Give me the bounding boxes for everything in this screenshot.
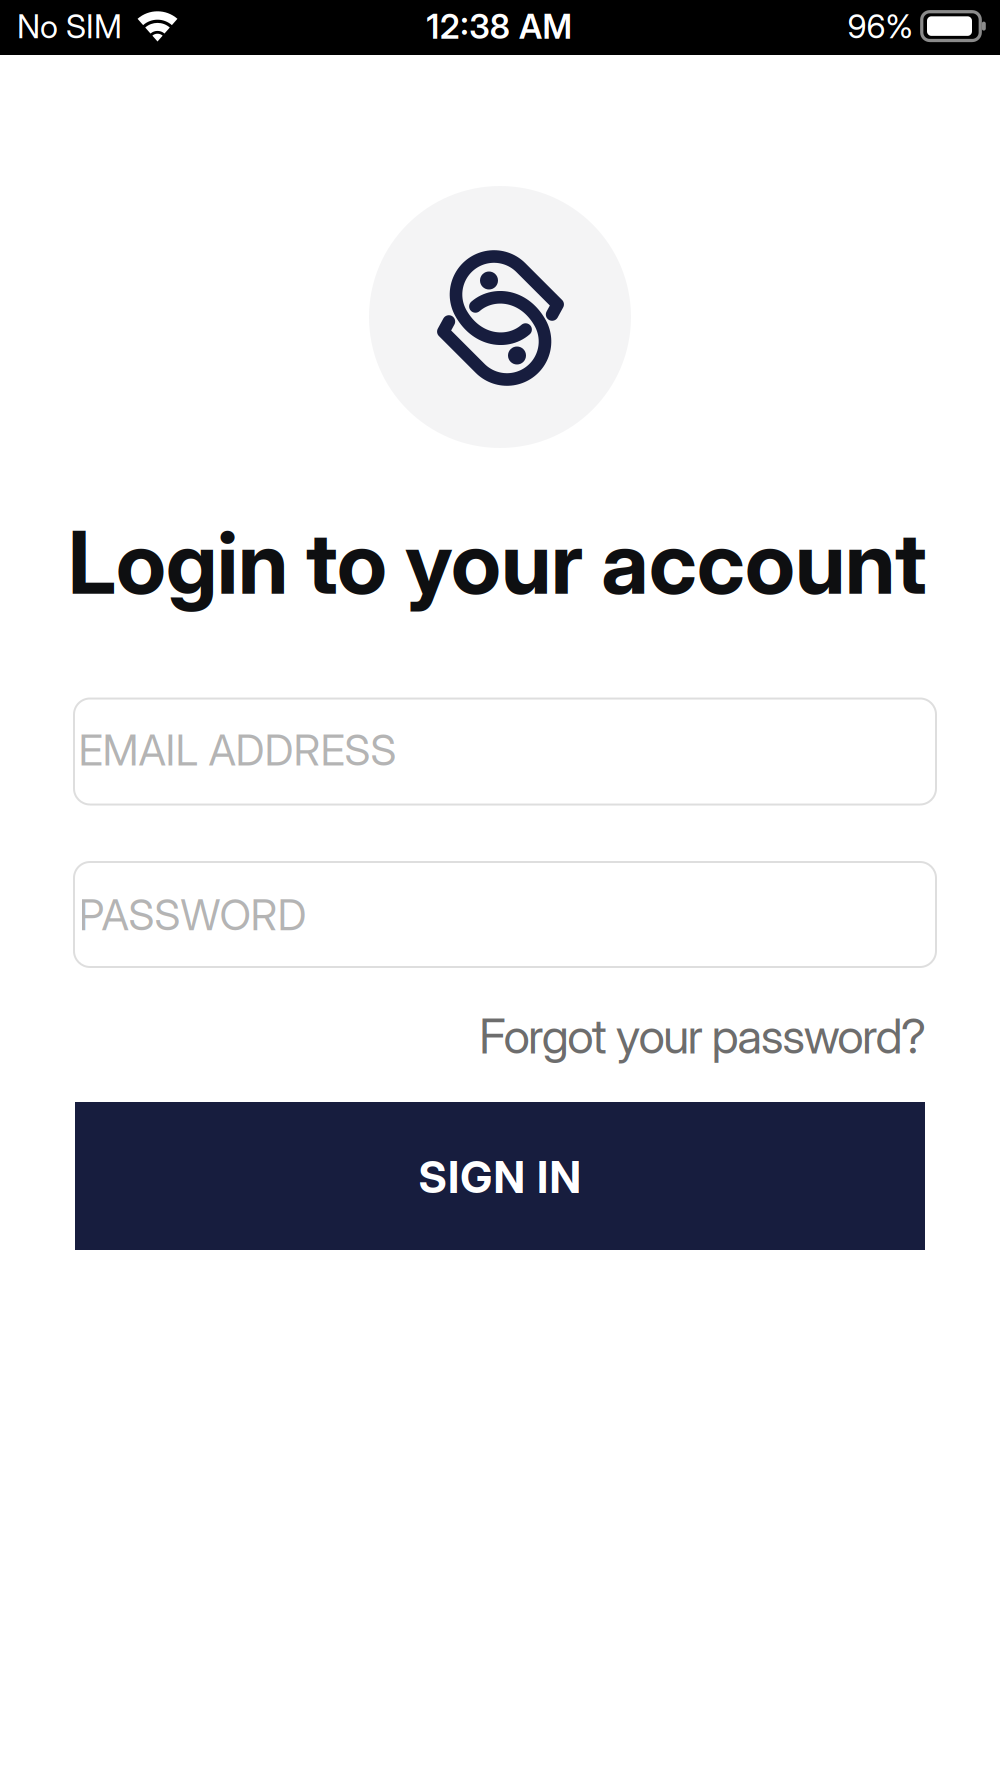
staticText: SIGN IN (419, 1151, 581, 1203)
staticText: 96% (847, 7, 913, 46)
staticText: Forgot your password? (479, 1007, 926, 1065)
staticText: Login to your account (68, 510, 927, 615)
button[interactable]: SIGN IN (75, 1102, 925, 1250)
button[interactable]: PASSWORD (74, 862, 936, 967)
button[interactable]: EMAIL ADDRESS (74, 698, 936, 804)
staticText: 12:38 AM (426, 6, 572, 47)
staticText: EMAIL ADDRESS (78, 725, 396, 776)
button[interactable]: Forgot your password? (76, 1007, 926, 1065)
staticText: PASSWORD (78, 890, 306, 940)
staticText: No SIM (17, 7, 122, 46)
